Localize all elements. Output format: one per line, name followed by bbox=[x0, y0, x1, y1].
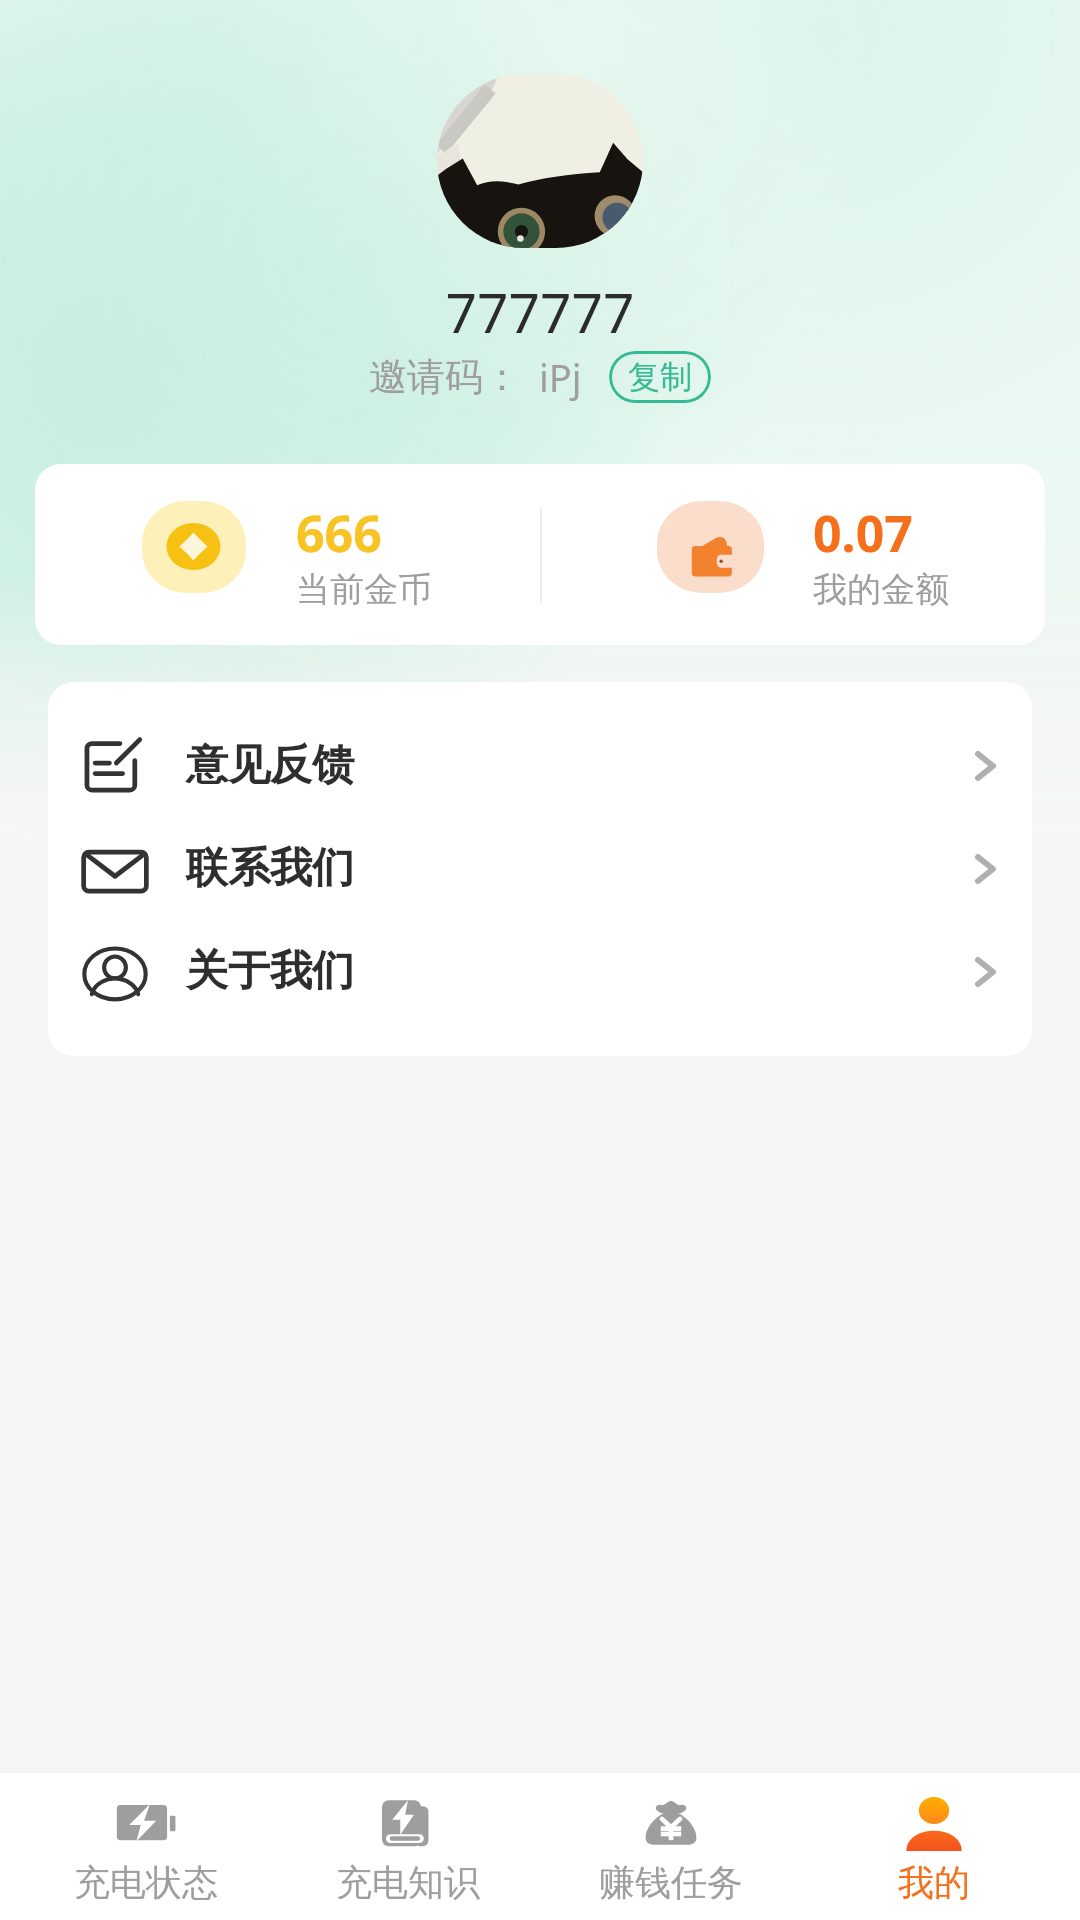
button[interactable]: 我的 bbox=[802, 1773, 1065, 1920]
button[interactable]: 意见反馈 bbox=[48, 714, 1032, 817]
staticText: 666 bbox=[296, 499, 382, 567]
staticText: 当前金币 bbox=[296, 568, 432, 611]
staticText: 关于我们 bbox=[186, 945, 354, 998]
staticText: 复制 bbox=[628, 357, 692, 397]
staticText: 充电状态 bbox=[74, 1860, 218, 1905]
staticText: 777777 bbox=[0, 274, 1080, 349]
button[interactable]: 联系我们 bbox=[48, 817, 1032, 920]
staticText: 赚钱任务 bbox=[599, 1860, 743, 1905]
staticText: 0.07 bbox=[813, 499, 913, 567]
staticText: 充电知识 bbox=[336, 1860, 480, 1905]
staticText: 联系我们 bbox=[186, 842, 354, 895]
button[interactable]: 0.07 bbox=[542, 464, 1045, 645]
button[interactable]: 复制 bbox=[609, 351, 711, 403]
button[interactable]: 充电状态 bbox=[15, 1773, 277, 1920]
button[interactable]: 关于我们 bbox=[48, 920, 1032, 1023]
staticText: 我的 bbox=[898, 1860, 970, 1905]
staticText: 邀请码： bbox=[369, 353, 521, 401]
staticText: iPj bbox=[539, 351, 582, 403]
button[interactable]: Avatar bbox=[437, 74, 643, 248]
staticText: 意见反馈 bbox=[186, 739, 354, 792]
button[interactable]: 666 bbox=[35, 464, 540, 645]
button[interactable]: 赚钱任务 bbox=[539, 1773, 802, 1920]
button[interactable]: 充电知识 bbox=[277, 1773, 539, 1920]
staticText: 我的金额 bbox=[813, 568, 949, 611]
